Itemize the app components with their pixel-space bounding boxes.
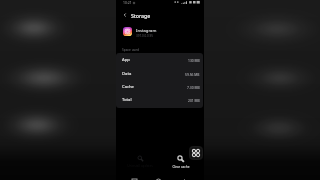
button[interactable]: App [116,53,203,66]
staticText: Instagram [136,28,157,34]
button[interactable]: Uninstall updates [110,155,170,175]
staticText: Space used [122,48,139,52]
staticText: 130 MB [188,58,200,62]
staticText: 10:21 [123,0,132,5]
staticText: 59.56 MB [185,72,200,76]
button[interactable]: Assistive menu [189,146,203,160]
button[interactable]: Back [121,11,129,19]
staticText: Clear cache [172,165,190,169]
button[interactable]: Instagram [116,23,204,39]
staticText: Total [122,97,132,103]
button[interactable]: Data [116,67,203,80]
button[interactable]: Clear cache [153,155,209,175]
button[interactable]: Recents [128,172,140,180]
staticText: Cache [122,84,134,90]
staticText: 397.0.0.0.95 [136,34,153,38]
staticText: 7.30 MB [187,85,200,89]
staticText: Data [122,71,132,77]
button[interactable]: Home [152,172,164,180]
staticText: 201 MB [188,98,200,102]
button[interactable]: Total [116,93,203,106]
staticText: App [122,57,130,63]
button[interactable]: Back [177,172,189,180]
staticText: Storage [131,12,151,19]
button[interactable]: Cache [116,80,203,93]
